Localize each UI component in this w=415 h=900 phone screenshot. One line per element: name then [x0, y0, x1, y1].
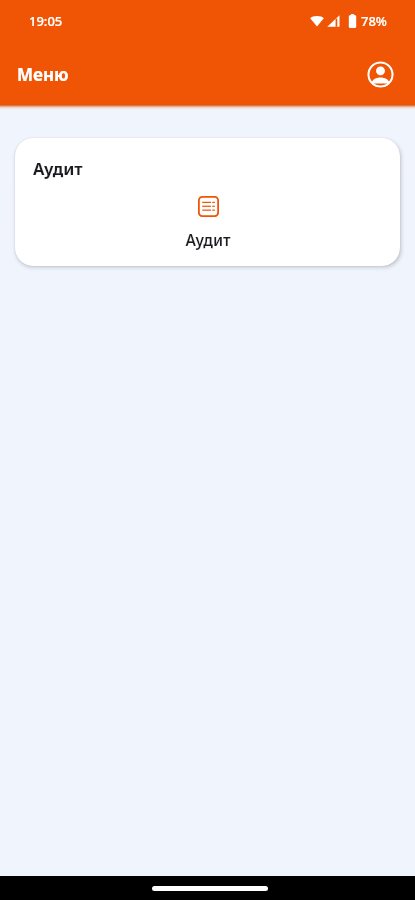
button[interactable]: Аудит — [160, 188, 256, 258]
staticText: Аудит — [185, 229, 231, 250]
staticText: Меню — [17, 63, 69, 86]
staticText: Аудит — [33, 157, 83, 179]
button[interactable]: Аудит — [15, 138, 400, 266]
staticText: 19:05 — [29, 12, 63, 30]
button[interactable]: Account — [367, 61, 394, 88]
staticText: 78% — [361, 12, 387, 30]
